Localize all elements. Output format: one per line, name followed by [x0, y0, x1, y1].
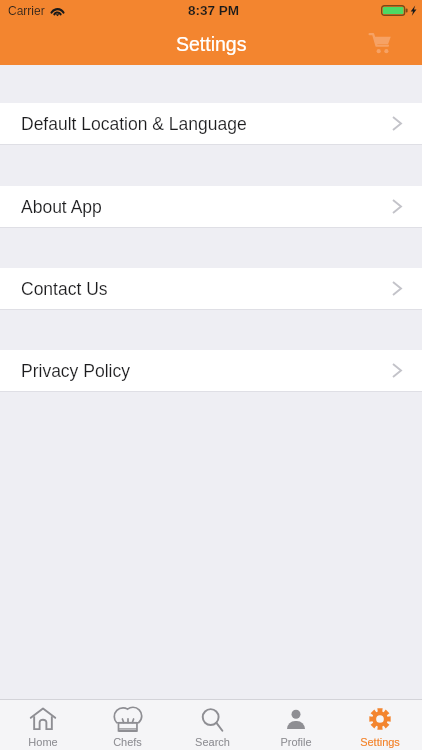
staticText: Settings: [360, 736, 400, 748]
staticText: Settings: [176, 33, 247, 55]
staticText: Home: [28, 736, 58, 748]
button[interactable]: Privacy Policy: [0, 350, 422, 391]
button[interactable]: Search: [170, 700, 254, 750]
button[interactable]: Home: [0, 700, 85, 750]
button[interactable]: Default Location & Language: [0, 103, 422, 144]
staticText: Default Location & Language: [21, 114, 247, 134]
staticText: Privacy Policy: [21, 361, 130, 381]
button[interactable]: About App: [0, 186, 422, 227]
staticText: Carrier: [8, 4, 45, 17]
button[interactable]: Cart: [363, 26, 397, 60]
button[interactable]: Chefs: [85, 700, 170, 750]
staticText: Profile: [280, 736, 312, 748]
button[interactable]: Contact Us: [0, 268, 422, 309]
staticText: Chefs: [113, 736, 142, 748]
staticText: Search: [195, 736, 230, 748]
button[interactable]: Profile: [254, 700, 338, 750]
button[interactable]: Settings: [338, 700, 422, 750]
staticText: Contact Us: [21, 279, 108, 299]
staticText: 8:37 PM: [188, 3, 240, 18]
staticText: About App: [21, 197, 102, 217]
